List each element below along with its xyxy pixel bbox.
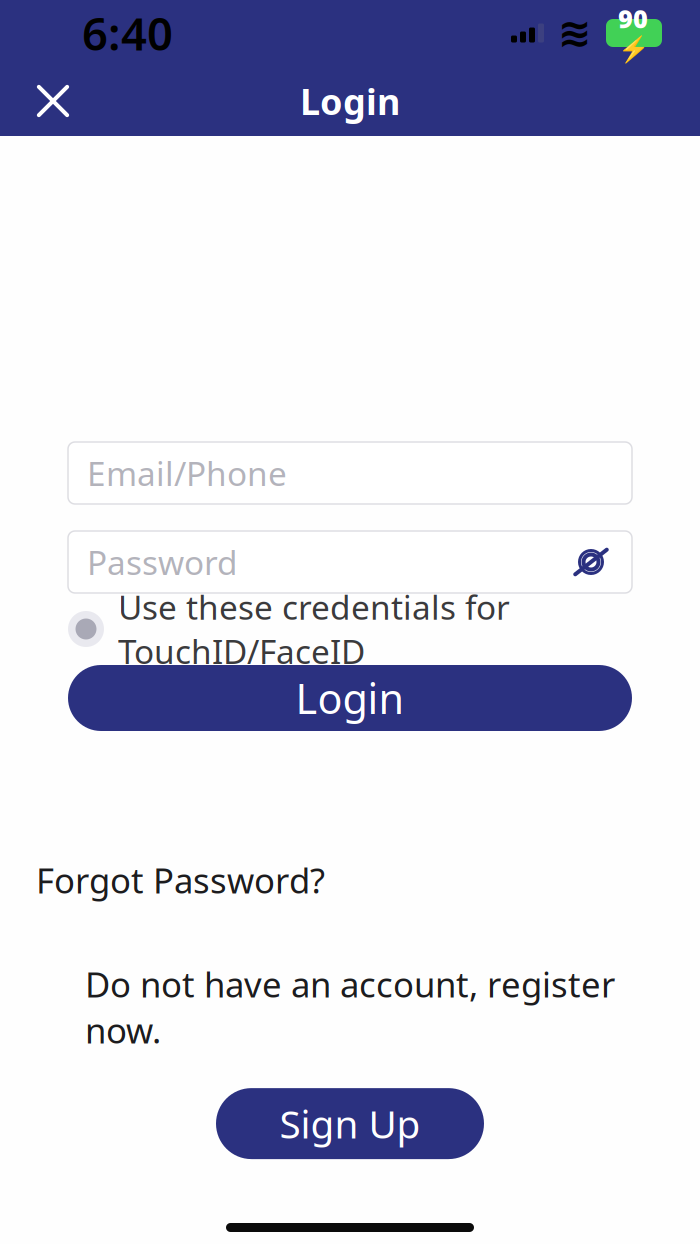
staticText: Forgot Password?: [36, 857, 325, 903]
button[interactable]: Login: [68, 665, 632, 731]
staticText: Use these credentials for TouchID/FaceID: [118, 585, 510, 673]
button[interactable]: Use these credentials for TouchID/FaceID: [68, 607, 632, 651]
staticText: 6:40: [82, 3, 173, 63]
button[interactable]: Sign Up: [216, 1088, 484, 1159]
staticText: Sign Up: [279, 1098, 420, 1149]
button[interactable]: Close: [22, 70, 84, 132]
staticText: Password: [87, 540, 238, 584]
staticText: Login: [295, 671, 404, 725]
staticText: Do not have an account, register now.: [85, 961, 615, 1053]
button[interactable]: Forgot Password?: [36, 857, 325, 903]
staticText: ≋: [558, 10, 592, 56]
staticText: Email/Phone: [87, 451, 287, 495]
staticText: Login: [300, 77, 400, 125]
staticText: 90⚡: [618, 2, 650, 64]
button[interactable]: Show password: [564, 539, 618, 585]
